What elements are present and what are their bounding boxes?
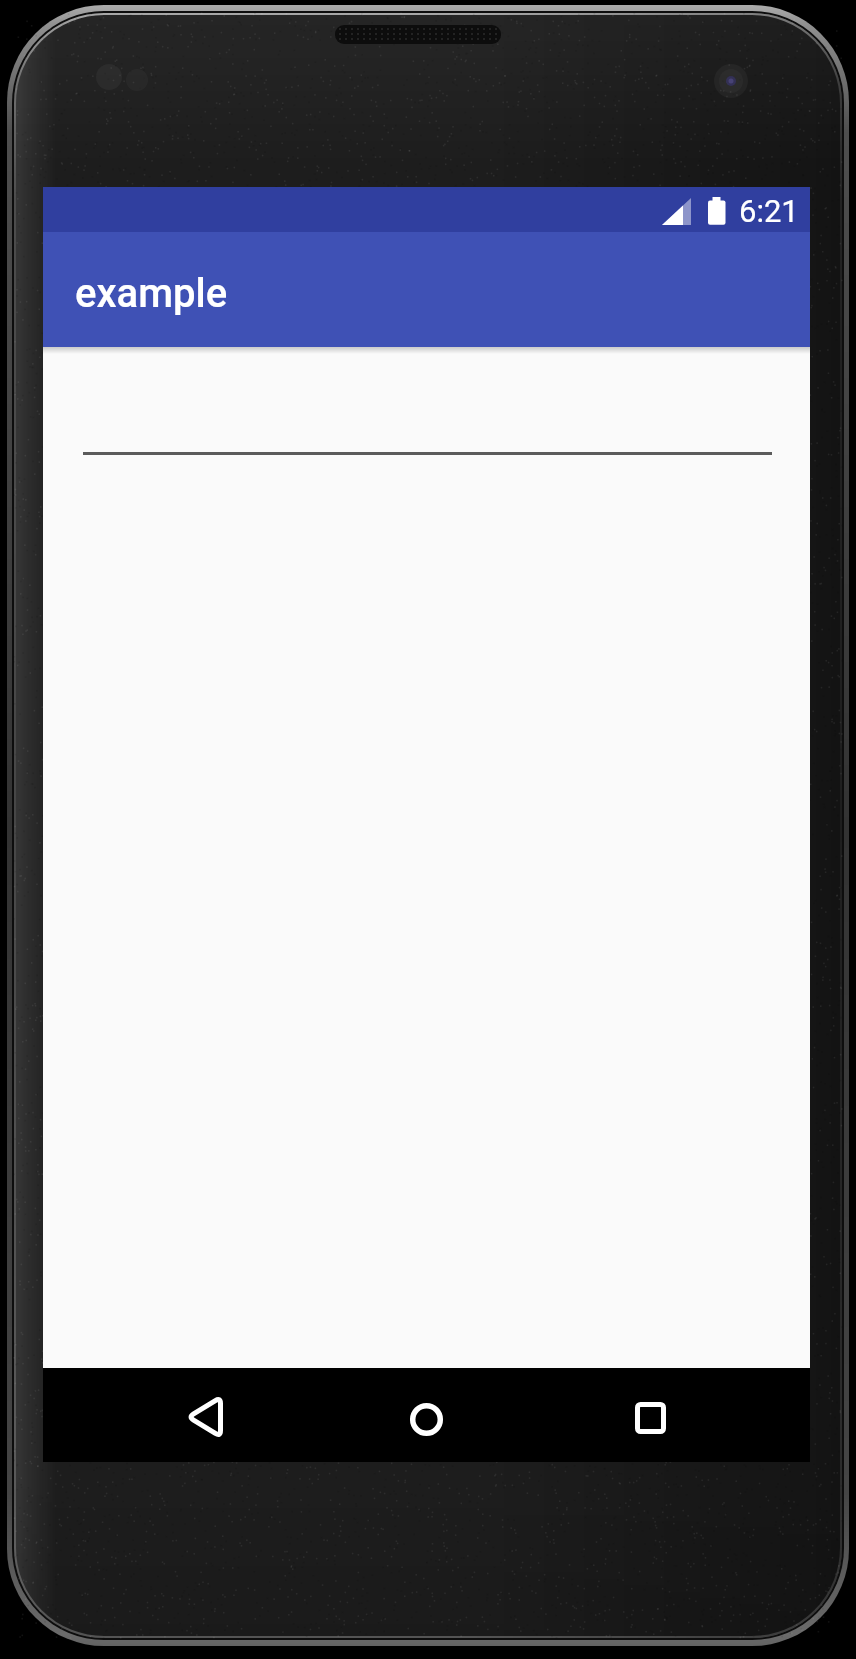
staticText: example [75, 270, 228, 317]
button[interactable] [83, 387, 772, 455]
button[interactable] [613, 1382, 688, 1457]
button[interactable] [167, 1382, 242, 1457]
button[interactable] [389, 1382, 464, 1457]
staticText: 6:21 [739, 193, 799, 229]
